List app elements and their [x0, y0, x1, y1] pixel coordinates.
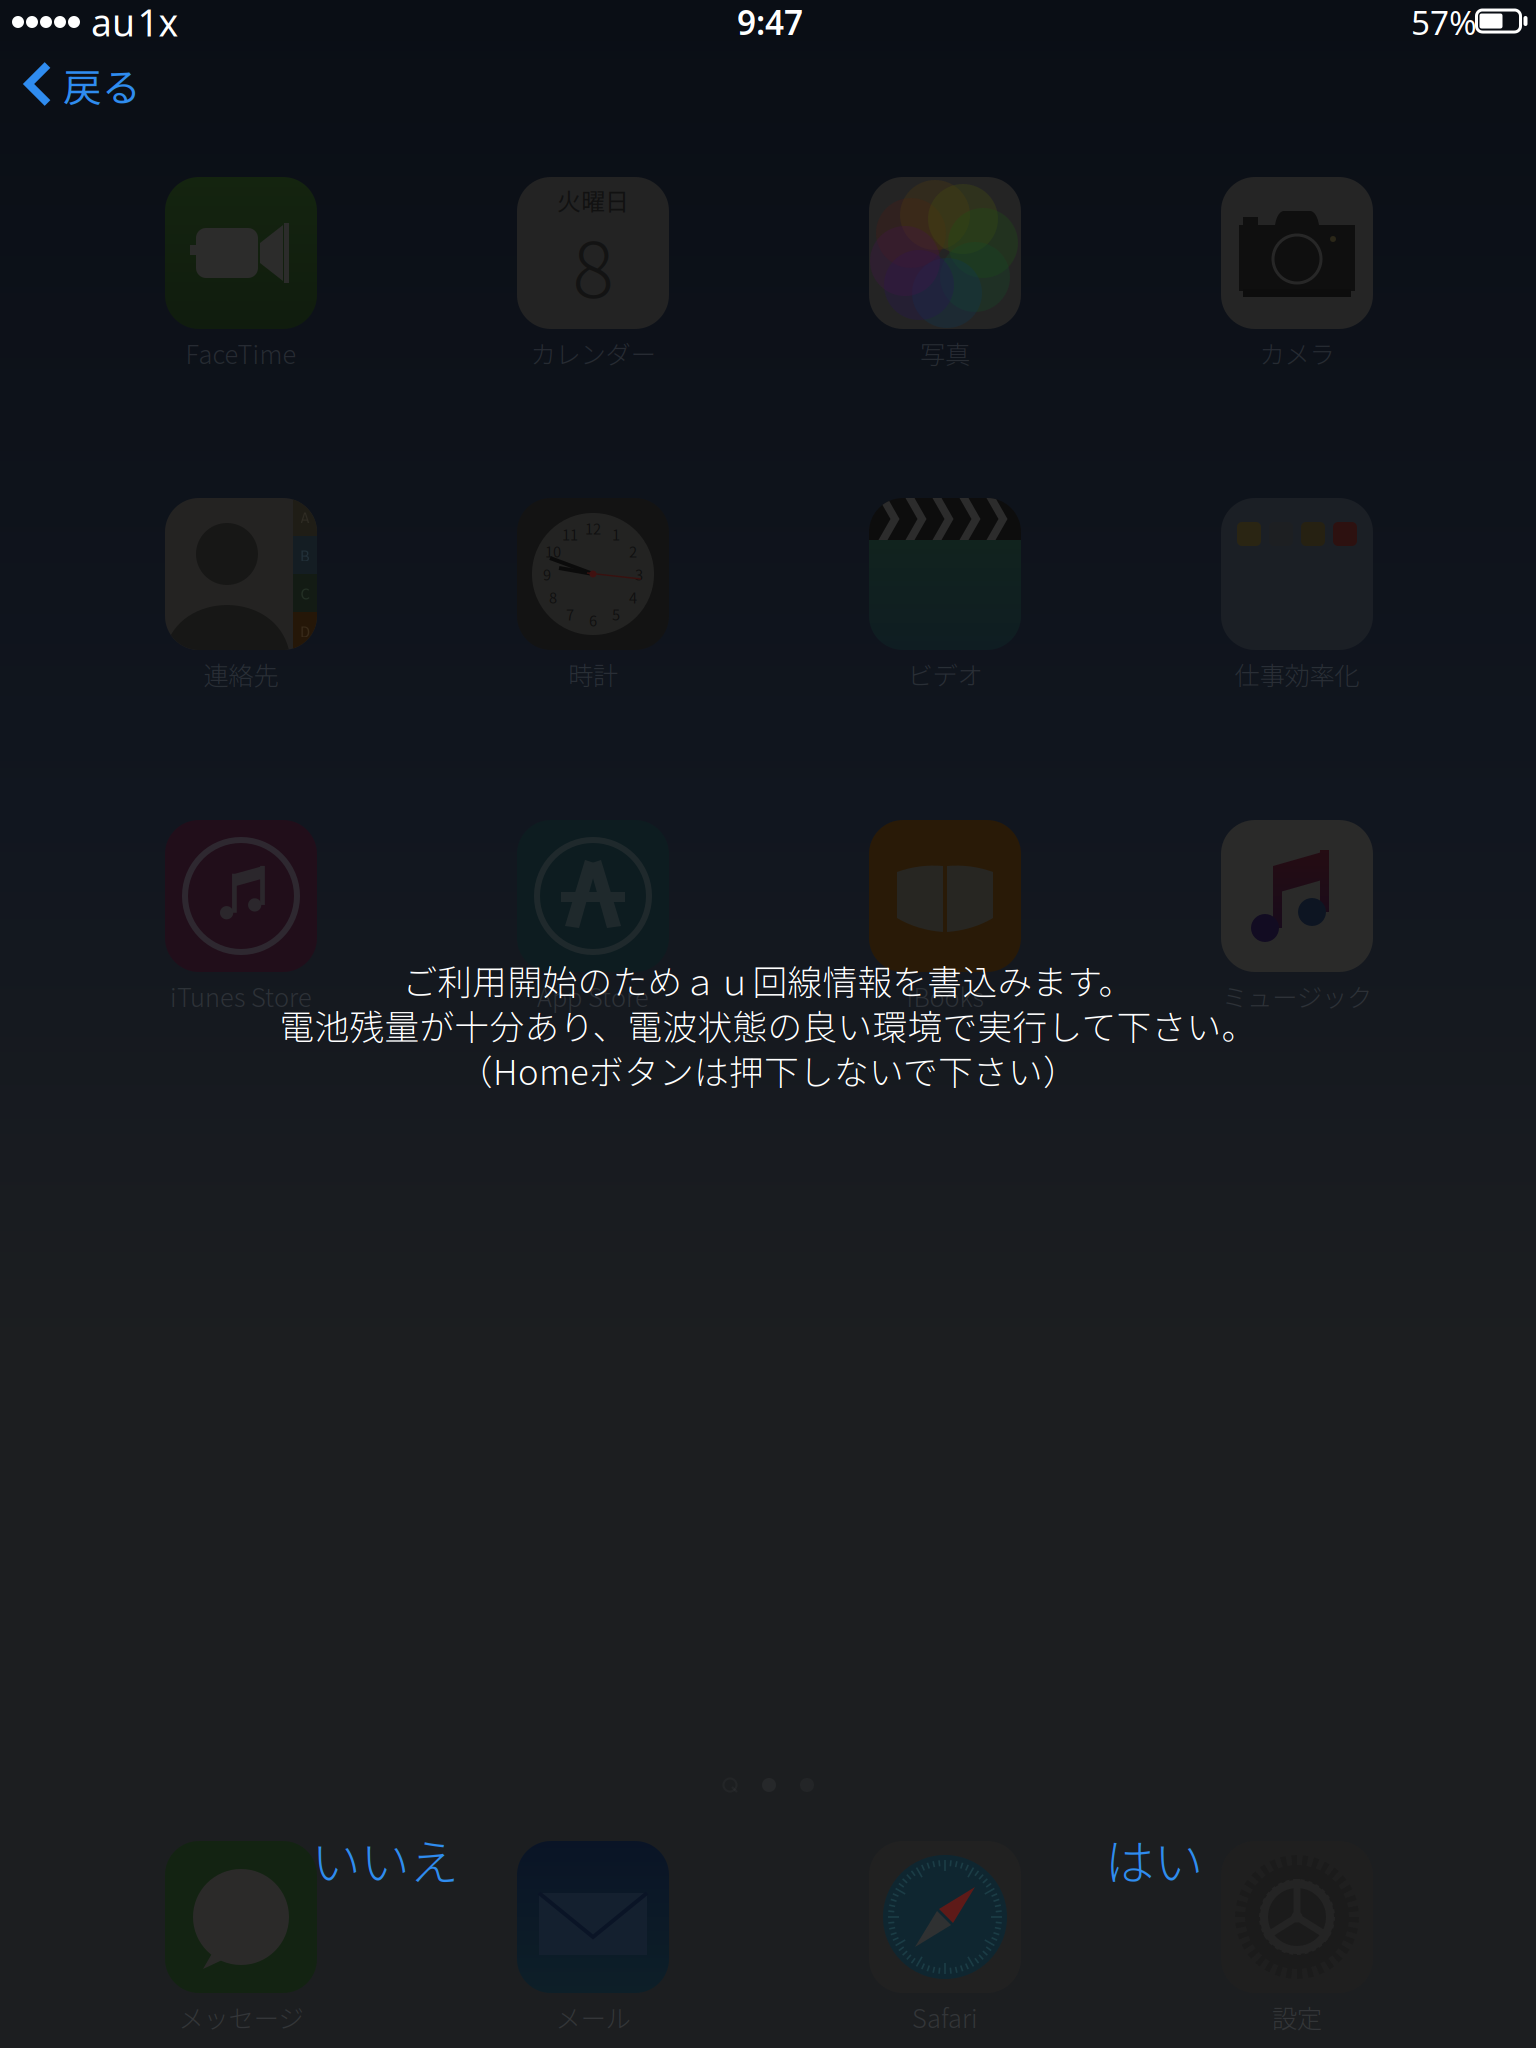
staticText: 1x — [137, 0, 178, 47]
button[interactable]: 仕事効率化 — [1137, 498, 1457, 698]
staticText: 57% — [1411, 0, 1477, 44]
button[interactable]: 火曜日 — [433, 177, 753, 377]
staticText: 11 — [562, 523, 578, 545]
button[interactable]: いいえ — [281, 1805, 488, 1913]
staticText: App Store — [537, 978, 649, 1014]
staticText: A — [300, 506, 309, 528]
staticText: Safari — [912, 1999, 978, 2035]
staticText: 12 — [585, 517, 601, 539]
staticText: 9:47 — [737, 0, 803, 44]
staticText: iBooks — [906, 978, 983, 1014]
staticText: 戻る — [63, 57, 141, 113]
button[interactable]: メッセージ — [81, 1841, 401, 2041]
staticText: 写真 — [920, 335, 970, 371]
staticText: 2 — [629, 540, 637, 562]
staticText: D — [300, 620, 310, 642]
staticText: 設定 — [1272, 1999, 1322, 2035]
staticText: ビデオ — [907, 656, 982, 692]
staticText: 電池残量が十分あり、電波状態の良い環境で実行して下さい。 — [279, 1000, 1256, 1050]
button[interactable]: Safari — [785, 1841, 1105, 2041]
staticText: iTunes Store — [170, 978, 312, 1014]
staticText: B — [300, 544, 310, 566]
staticText: はい — [1105, 1823, 1203, 1895]
button[interactable]: ミュージック — [1137, 820, 1457, 1020]
button[interactable]: iTunes Store — [81, 820, 401, 1020]
button[interactable]: カメラ — [1137, 177, 1457, 377]
staticText: 8 — [549, 586, 557, 608]
staticText: 10 — [545, 540, 561, 562]
button[interactable]: 戻る — [0, 44, 150, 124]
staticText: カメラ — [1259, 335, 1334, 371]
staticText: いいえ — [311, 1823, 458, 1895]
staticText: 1 — [612, 523, 620, 545]
button[interactable]: 12 — [433, 498, 753, 698]
staticText: FaceTime — [185, 335, 296, 371]
staticText: 火曜日 — [557, 183, 629, 217]
staticText: ご利用開始のためａｕ回線情報を書込みます。 — [402, 955, 1133, 1005]
button[interactable]: 写真 — [785, 177, 1105, 377]
staticText: 4 — [629, 586, 637, 608]
staticText: au — [91, 0, 135, 47]
button[interactable]: メール — [433, 1841, 753, 2041]
staticText: メッセージ — [178, 1999, 303, 2035]
staticText: 時計 — [568, 656, 618, 692]
button[interactable]: はい — [1075, 1805, 1233, 1913]
button[interactable]: FaceTime — [81, 177, 401, 377]
staticText: 6 — [589, 609, 597, 631]
staticText: カレンダー — [530, 335, 655, 371]
button[interactable]: A — [81, 498, 401, 698]
staticText: 仕事効率化 — [1234, 656, 1359, 692]
button[interactable]: iBooks — [785, 820, 1105, 1020]
staticText: メール — [555, 1999, 630, 2035]
button[interactable]: ビデオ — [785, 498, 1105, 698]
staticText: 8 — [572, 208, 613, 320]
staticText: ミュージック — [1222, 978, 1372, 1014]
button[interactable]: App Store — [433, 820, 753, 1020]
staticText: （Homeボタンは押下しないで下さい） — [458, 1045, 1078, 1095]
staticText: 連絡先 — [203, 656, 278, 692]
staticText: 9 — [543, 563, 551, 585]
button[interactable]: 設定 — [1137, 1841, 1457, 2041]
staticText: 7 — [566, 603, 574, 625]
staticText: 5 — [612, 603, 620, 625]
staticText: 3 — [635, 563, 643, 585]
staticText: C — [300, 582, 309, 604]
